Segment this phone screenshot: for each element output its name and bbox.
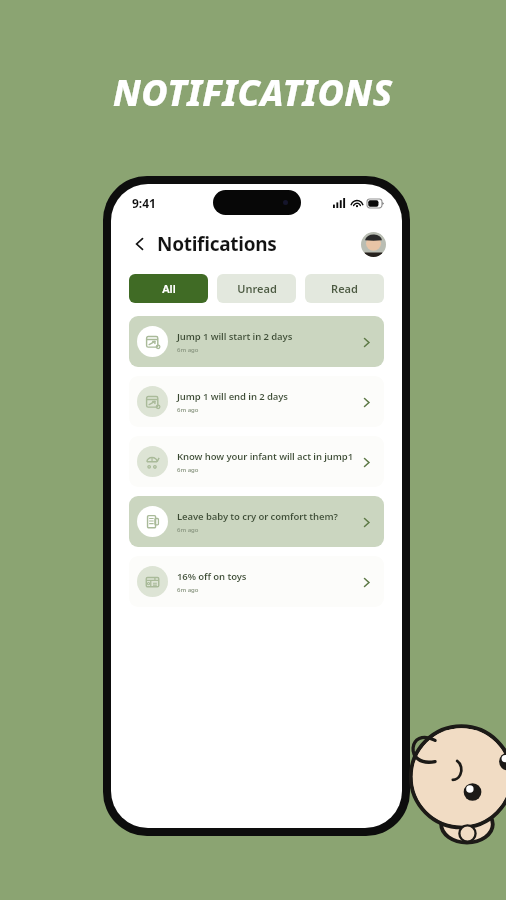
button[interactable]: Jump 1 will start in 2 days <box>129 316 384 367</box>
staticText: Notifications <box>157 231 277 257</box>
button[interactable]: Profile <box>361 232 386 257</box>
staticText: 16% off on toys <box>177 570 247 583</box>
staticText: NOTIFICATIONS <box>113 68 393 117</box>
staticText: 6m ago <box>177 586 199 594</box>
button[interactable]: Back <box>129 233 151 255</box>
staticText: Jump 1 will start in 2 days <box>177 330 293 343</box>
button[interactable]: Know how your infant will act in jump1 <box>129 436 384 487</box>
staticText: Jump 1 will end in 2 days <box>177 390 288 403</box>
staticText: 6m ago <box>177 466 199 474</box>
button[interactable]: Unread <box>217 274 296 303</box>
staticText: Read <box>331 281 358 296</box>
staticText: 6m ago <box>177 406 199 414</box>
button[interactable]: Jump 1 will end in 2 days <box>129 376 384 427</box>
staticText: 6m ago <box>177 526 199 534</box>
button[interactable]: All <box>129 274 208 303</box>
staticText: 6m ago <box>177 346 199 354</box>
button[interactable]: Read <box>305 274 384 303</box>
staticText: Unread <box>237 281 277 296</box>
staticText: Know how your infant will act in jump1 <box>177 450 354 463</box>
button[interactable]: 16% off on toys <box>129 556 384 607</box>
staticText: Leave baby to cry or comfort them? <box>177 510 338 523</box>
staticText: 9:41 <box>132 195 156 211</box>
staticText: All <box>162 281 176 296</box>
button[interactable]: Leave baby to cry or comfort them? <box>129 496 384 547</box>
